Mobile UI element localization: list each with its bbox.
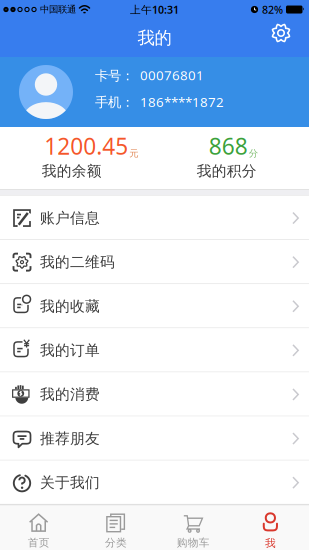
button[interactable]: 分类 (77, 505, 154, 550)
staticText: 元 (129, 148, 138, 159)
staticText: 上午10:31 (130, 2, 179, 17)
button[interactable]: 1200.45 (0, 127, 154, 189)
button[interactable]: 账户信息 (0, 196, 309, 240)
button[interactable]: 购物车 (154, 505, 232, 550)
staticText: 中国联通 (40, 4, 76, 15)
staticText: 账户信息 (40, 209, 100, 227)
button[interactable]: 我的收藏 (0, 284, 309, 328)
button[interactable]: 首页 (0, 505, 77, 550)
staticText: 868 (209, 131, 248, 161)
staticText: 我的二维码 (40, 253, 115, 271)
button[interactable]: 我的消费 (0, 372, 309, 416)
staticText: 首页 (28, 536, 50, 549)
staticText: 分 (249, 148, 258, 159)
staticText: 手机： 186****1872 (95, 93, 224, 111)
button[interactable]: 我的二维码 (0, 240, 309, 284)
staticText: 推荐朋友 (40, 429, 100, 447)
button[interactable]: 我 (232, 505, 309, 550)
staticText: 我的订单 (40, 341, 100, 359)
staticText: 我的积分 (197, 162, 257, 180)
button[interactable]: 868 (154, 127, 309, 189)
staticText: 购物车 (177, 536, 210, 549)
staticText: 82% (262, 2, 283, 17)
staticText: 我 (265, 537, 276, 550)
staticText: 1200.45 (44, 131, 128, 161)
staticText: 我的余额 (42, 162, 102, 180)
button[interactable]: 设置 (271, 15, 309, 51)
button[interactable]: 我的订单 (0, 328, 309, 372)
button[interactable]: 关于我们 (0, 461, 309, 505)
staticText: 卡号： 00076801 (95, 66, 204, 84)
staticText: 我的 (137, 27, 171, 49)
staticText: 分类 (105, 536, 127, 549)
button[interactable]: 推荐朋友 (0, 416, 309, 461)
staticText: 我的收藏 (40, 297, 100, 315)
staticText: 我的消费 (40, 385, 100, 403)
staticText: 关于我们 (40, 474, 100, 492)
